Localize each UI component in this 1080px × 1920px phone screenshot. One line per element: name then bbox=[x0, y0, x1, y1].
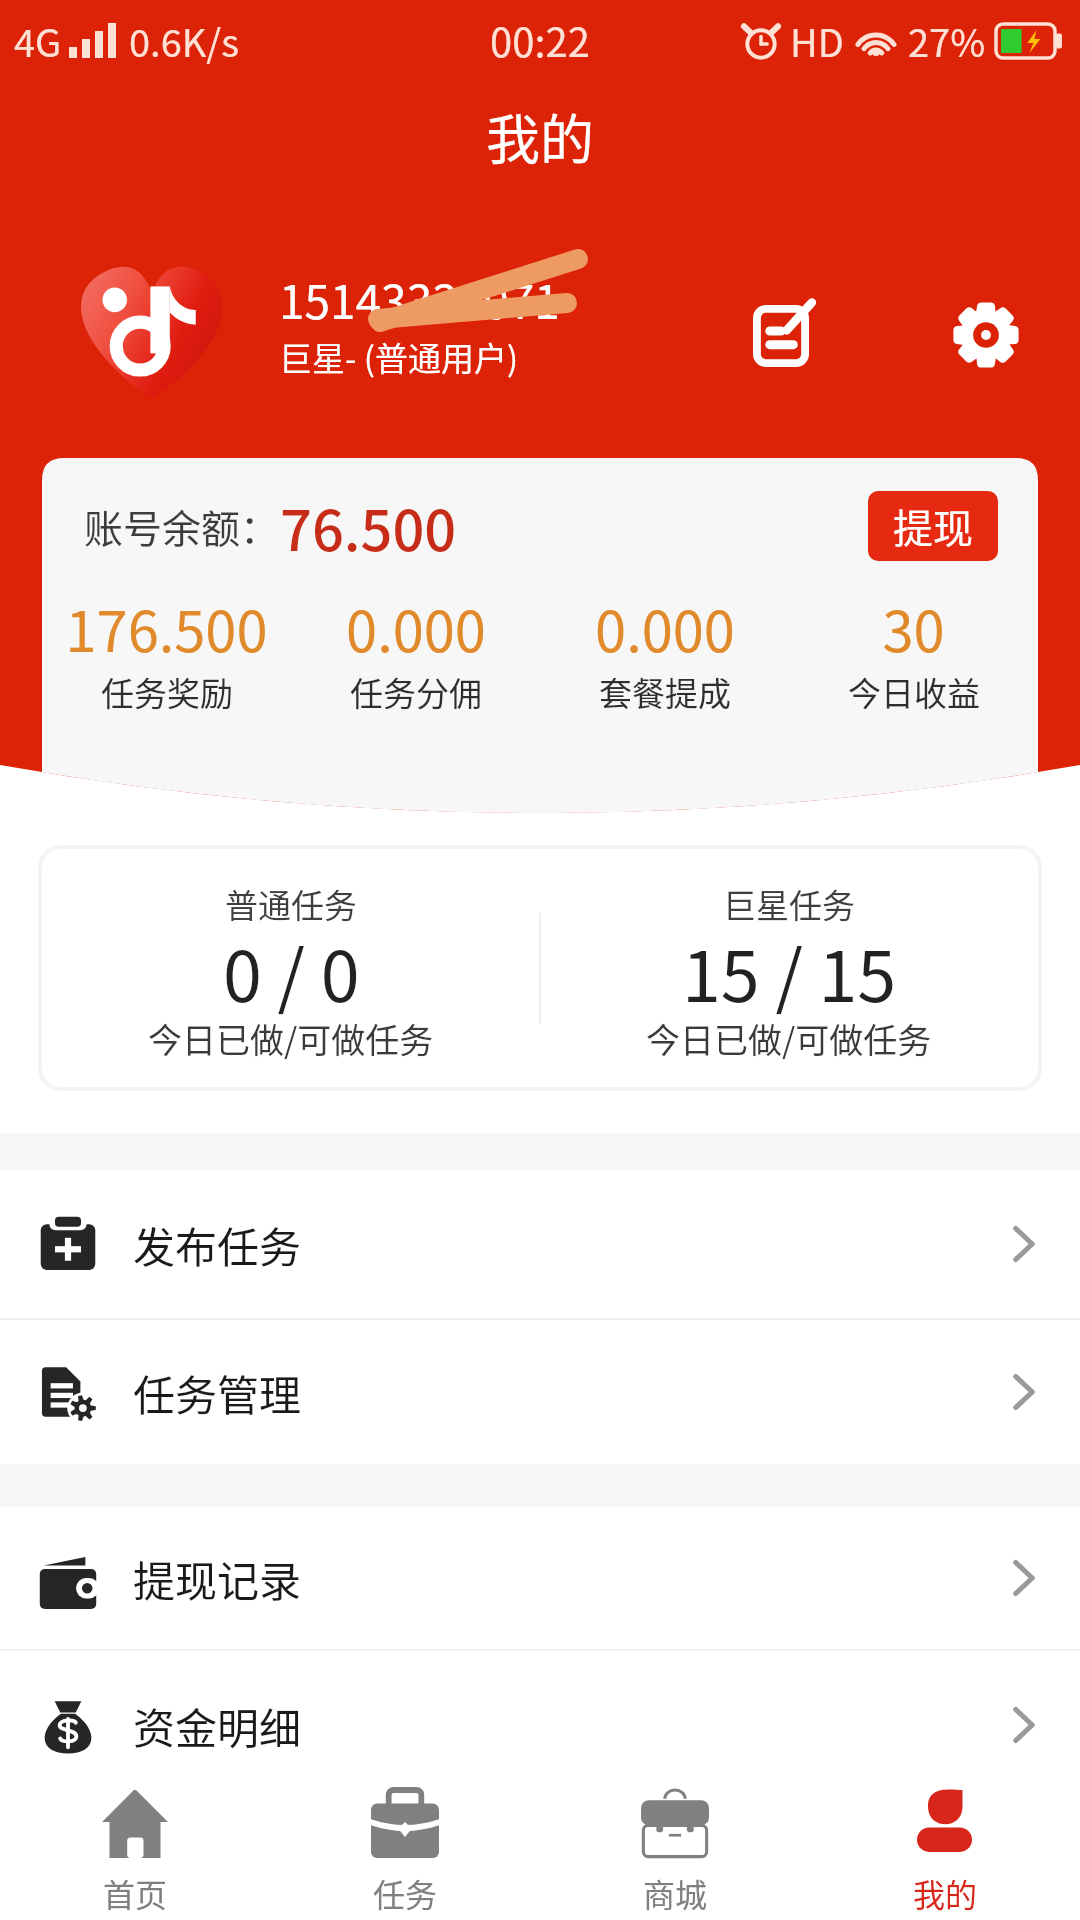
staticText: 商城 bbox=[643, 1870, 708, 1916]
staticText: 0.6K/s bbox=[129, 13, 239, 68]
staticText: 提现 bbox=[893, 497, 973, 555]
staticText: 任务 bbox=[373, 1870, 438, 1916]
staticText: 任务管理 bbox=[133, 1362, 302, 1423]
staticText: 巨星任务 bbox=[723, 880, 855, 928]
staticText: 30 bbox=[882, 587, 945, 668]
staticText: 资金明细 bbox=[133, 1695, 302, 1756]
staticText: 今日收益 bbox=[848, 668, 980, 716]
staticText: 15143339071 bbox=[279, 266, 560, 333]
staticText: 账号余额： bbox=[84, 498, 280, 554]
button[interactable]: 商城 bbox=[540, 1790, 810, 1920]
staticText: 今日已做/可做任务 bbox=[148, 1014, 434, 1063]
staticText: 套餐提成 bbox=[599, 668, 731, 716]
button[interactable]: 任务 bbox=[270, 1790, 540, 1920]
staticText: 15 / 15 bbox=[682, 921, 897, 1022]
button[interactable]: 设置 bbox=[930, 279, 1042, 391]
staticText: 0 / 0 bbox=[223, 921, 360, 1022]
staticText: 普通任务 bbox=[225, 880, 357, 928]
staticText: 我的 bbox=[486, 97, 594, 175]
button[interactable]: 发布任务 bbox=[0, 1170, 1080, 1318]
staticText: 76.500 bbox=[280, 486, 457, 567]
staticText: 巨星- (普通用户) bbox=[279, 333, 519, 381]
staticText: 首页 bbox=[103, 1870, 168, 1916]
staticText: 0.000 bbox=[346, 587, 486, 668]
staticText: 176.500 bbox=[65, 587, 268, 668]
button[interactable]: 首页 bbox=[0, 1790, 270, 1920]
staticText: 4G bbox=[14, 13, 62, 68]
staticText: 我的 bbox=[913, 1870, 978, 1916]
button[interactable]: 任务管理 bbox=[0, 1320, 1080, 1464]
staticText: 00:22 bbox=[490, 11, 590, 69]
staticText: 今日已做/可做任务 bbox=[646, 1014, 932, 1063]
button[interactable]: 提现记录 bbox=[0, 1507, 1080, 1649]
staticText: 0.000 bbox=[595, 587, 735, 668]
staticText: 发布任务 bbox=[133, 1214, 302, 1275]
staticText: 任务奖励 bbox=[101, 668, 233, 716]
button[interactable]: 我的 bbox=[810, 1790, 1080, 1920]
button[interactable]: 提现 bbox=[868, 491, 998, 561]
staticText: HD bbox=[790, 13, 844, 68]
staticText: 提现记录 bbox=[133, 1548, 302, 1609]
staticText: 27% bbox=[908, 13, 986, 68]
button[interactable]: 编辑资料 bbox=[725, 280, 837, 392]
button[interactable]: 资金明细 bbox=[0, 1651, 1080, 1799]
staticText: 任务分佣 bbox=[350, 668, 482, 716]
